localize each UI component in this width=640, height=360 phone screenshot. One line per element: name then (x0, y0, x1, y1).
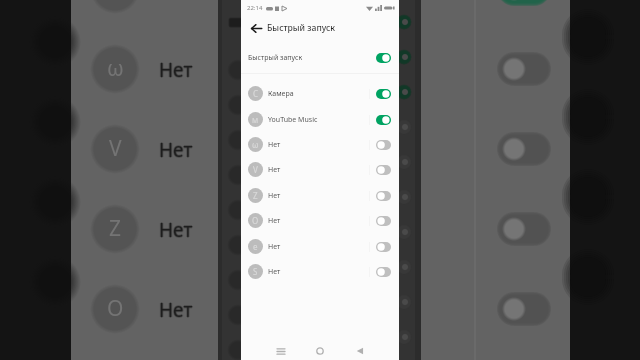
staticText: Нет (268, 216, 281, 226)
button[interactable]: V (241, 157, 399, 182)
button[interactable]: Switch off (376, 191, 391, 201)
button[interactable]: м (241, 107, 399, 132)
button[interactable]: Switch off (376, 267, 391, 277)
button[interactable]: Recent apps (271, 341, 291, 360)
button[interactable]: Switch off (376, 165, 391, 175)
staticText: V (253, 164, 258, 175)
staticText: Z (109, 214, 122, 243)
button[interactable]: Switch off (376, 216, 391, 226)
staticText: Нет (159, 56, 193, 82)
button[interactable]: e (241, 234, 399, 259)
staticText: e (253, 241, 258, 252)
staticText: Нет (268, 242, 281, 252)
staticText: Нет (159, 218, 193, 244)
staticText: Нет (158, 297, 192, 323)
staticText: O (107, 294, 124, 323)
button[interactable]: Switch on (376, 115, 391, 125)
button[interactable]: Switch off (376, 242, 391, 252)
staticText: ω (252, 139, 259, 150)
staticText: Камера (268, 89, 294, 99)
staticText: Нет (158, 217, 192, 243)
staticText: S (253, 266, 258, 277)
staticText: Нет (160, 297, 194, 323)
staticText: Нет (159, 298, 193, 324)
button[interactable]: Switch on (376, 89, 391, 99)
staticText: 22:14 (247, 4, 263, 12)
staticText: Нет (159, 137, 193, 163)
staticText: Нет (268, 267, 281, 277)
button[interactable]: Home (310, 341, 330, 360)
staticText: Нет (159, 216, 193, 242)
button[interactable]: Быстрый запуск (241, 44, 399, 71)
staticText: Нет (159, 58, 193, 84)
staticText: Нет (268, 191, 281, 201)
button[interactable]: Back (350, 341, 370, 360)
staticText: V (109, 134, 122, 163)
staticText: Быстрый запуск (267, 22, 336, 34)
staticText: ω (107, 54, 124, 83)
staticText: Нет (159, 136, 193, 162)
staticText: C (253, 88, 259, 99)
button[interactable]: Switch off (376, 140, 391, 150)
button[interactable]: Back (248, 20, 264, 36)
staticText: Нет (159, 217, 193, 243)
button[interactable]: O (241, 208, 399, 233)
staticText: Нет (158, 57, 192, 83)
staticText: Быстрый запуск (248, 53, 303, 63)
button[interactable]: C (241, 81, 399, 106)
staticText: Нет (159, 57, 193, 83)
staticText: м (252, 114, 259, 125)
staticText: Нет (159, 296, 193, 322)
staticText: Нет (268, 140, 281, 150)
button[interactable]: S (241, 259, 399, 284)
staticText: Нет (160, 217, 194, 243)
button[interactable]: Z (241, 183, 399, 208)
staticText: Нет (159, 138, 193, 164)
staticText: Нет (159, 297, 193, 323)
button[interactable]: ω (241, 132, 399, 157)
staticText: Z (253, 190, 258, 201)
staticText: YouTube Music (268, 115, 318, 125)
button[interactable]: Switch on (376, 53, 391, 63)
staticText: Нет (160, 57, 194, 83)
staticText: O (252, 215, 259, 226)
staticText: Нет (160, 137, 194, 163)
staticText: Нет (158, 137, 192, 163)
staticText: Нет (268, 165, 281, 175)
